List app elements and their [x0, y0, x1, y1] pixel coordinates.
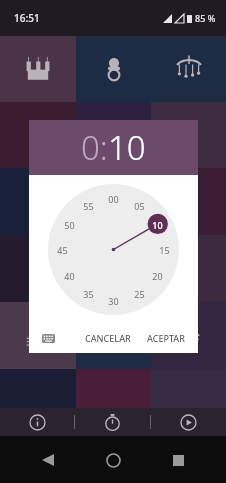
staticText: CANCELAR	[85, 332, 131, 344]
button[interactable]	[0, 168, 76, 235]
button[interactable]	[76, 235, 151, 302]
staticText: 40	[64, 270, 75, 282]
button[interactable]	[151, 235, 226, 302]
button[interactable]	[151, 369, 226, 436]
staticText: 85 %	[195, 12, 216, 24]
staticText: 30	[108, 295, 119, 307]
button[interactable]: Info	[0, 408, 74, 436]
button[interactable]	[0, 36, 76, 102]
button[interactable]: Back	[31, 443, 65, 477]
staticText: 15	[159, 244, 170, 256]
staticText: 35	[83, 288, 94, 300]
staticText: 10	[152, 219, 163, 231]
button[interactable]	[151, 36, 226, 102]
staticText: ACEPTAR	[147, 332, 185, 344]
staticText: 05	[134, 200, 145, 212]
button[interactable]: Keyboard input	[37, 327, 59, 349]
staticText: 00	[108, 193, 119, 205]
button[interactable]: CANCELAR	[80, 328, 136, 348]
staticText: 16:51	[14, 11, 40, 25]
staticText: 50	[64, 219, 75, 231]
button[interactable]: Play	[151, 408, 226, 436]
button[interactable]	[76, 102, 151, 168]
staticText: 55	[83, 200, 94, 212]
button[interactable]	[151, 102, 226, 168]
button[interactable]	[76, 168, 151, 235]
staticText: 10	[108, 125, 146, 170]
button[interactable]	[76, 302, 151, 369]
button[interactable]: Timer	[75, 408, 150, 436]
button[interactable]: ACEPTAR	[142, 328, 190, 348]
staticText: 45	[57, 244, 68, 256]
button[interactable]	[0, 102, 76, 168]
staticText: 25	[134, 288, 145, 300]
button[interactable]	[0, 369, 76, 436]
button[interactable]: Home	[96, 443, 130, 477]
button[interactable]	[76, 36, 151, 102]
button[interactable]	[0, 235, 76, 302]
button[interactable]	[151, 302, 226, 369]
staticText: 0:	[81, 125, 108, 170]
button[interactable]	[151, 168, 226, 235]
button[interactable]: Recents	[161, 443, 195, 477]
button[interactable]	[76, 369, 151, 436]
button[interactable]: 0:	[29, 120, 198, 175]
button[interactable]	[0, 302, 76, 369]
staticText: 20	[152, 270, 163, 282]
